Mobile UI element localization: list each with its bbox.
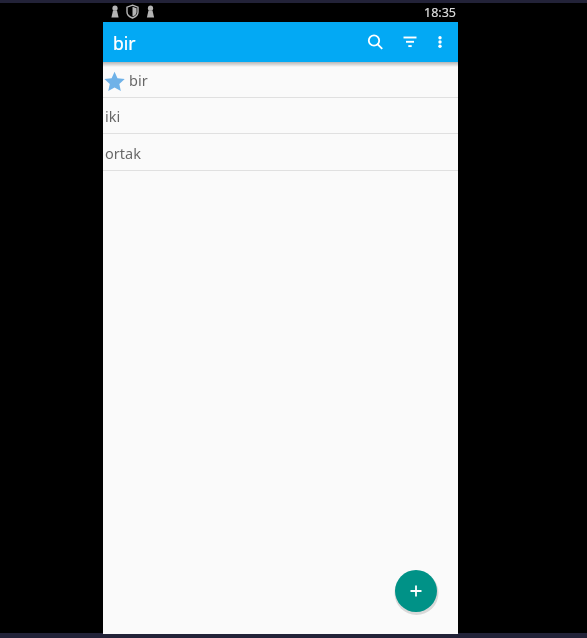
staticText: 18:35 [424,4,456,20]
button[interactable] [421,22,458,61]
button[interactable] [390,22,429,61]
staticText: ortak [105,143,141,163]
staticText: bir [113,31,136,55]
staticText: bir [129,70,148,90]
button[interactable]: iki [103,98,458,134]
button[interactable]: bir [103,62,458,98]
button[interactable] [355,22,394,61]
button[interactable]: ortak [103,134,458,171]
button[interactable] [395,570,437,612]
staticText: iki [105,106,121,126]
